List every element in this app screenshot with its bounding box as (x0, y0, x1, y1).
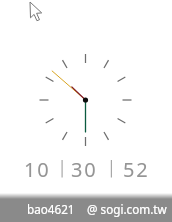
staticText: 30 (71, 156, 98, 183)
button[interactable]: 10 (24, 156, 51, 183)
staticText: @ sogi.com.tw (87, 201, 167, 217)
button[interactable] (0, 0, 172, 222)
button[interactable]: 30 (71, 156, 98, 183)
button[interactable]: 52 (123, 156, 150, 183)
staticText: 52 (123, 156, 150, 183)
staticText: 10 (24, 156, 51, 183)
staticText: bao4621 (27, 201, 75, 217)
